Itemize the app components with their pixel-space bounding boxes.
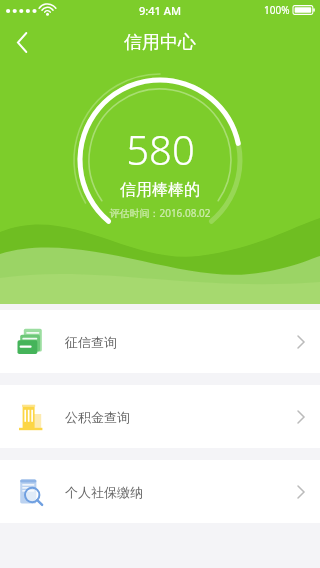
button[interactable]: 公积金查询 (0, 385, 320, 448)
button[interactable]: 征信查询 (0, 310, 320, 373)
button[interactable]: Back (0, 20, 44, 64)
staticText: 100% (264, 3, 290, 17)
staticText: 580 (126, 122, 195, 176)
staticText: 信用中心 (124, 31, 196, 54)
staticText: 征信查询 (65, 334, 297, 350)
staticText: 信用棒棒的 (120, 180, 200, 200)
staticText: 评估时间：2016.08.02 (109, 206, 211, 220)
staticText: 个人社保缴纳 (65, 484, 297, 500)
staticText: 9:41 AM (139, 3, 182, 18)
staticText: 公积金查询 (65, 409, 297, 425)
button[interactable]: 个人社保缴纳 (0, 460, 320, 523)
